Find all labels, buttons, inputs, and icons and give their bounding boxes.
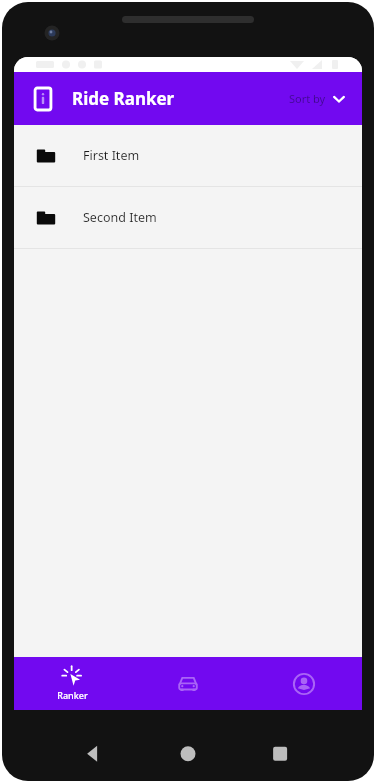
button[interactable]: Second Item xyxy=(14,187,362,248)
button[interactable]: First Item xyxy=(14,125,362,186)
button[interactable]: Profile xyxy=(246,657,362,710)
staticText: Ride Ranker xyxy=(72,87,175,110)
staticText: Second Item xyxy=(83,209,157,226)
button[interactable]: App icon xyxy=(26,82,60,116)
staticText: First Item xyxy=(83,147,140,164)
button[interactable]: Sort by xyxy=(285,85,350,112)
button[interactable]: Rides xyxy=(130,657,246,710)
staticText: Sort by xyxy=(289,91,326,106)
button[interactable]: Ranker xyxy=(14,657,130,710)
staticText: Ranker xyxy=(57,689,88,701)
